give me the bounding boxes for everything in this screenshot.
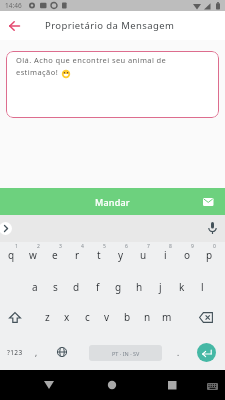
button[interactable]: k (171, 276, 192, 298)
button[interactable] (208, 222, 217, 235)
button[interactable]: e (44, 243, 66, 266)
button[interactable]: . (170, 341, 186, 363)
staticText: n (144, 310, 151, 324)
staticText: o (184, 248, 191, 262)
staticText: u (140, 248, 147, 262)
staticText: c (85, 310, 90, 324)
staticText: g (115, 280, 122, 294)
button[interactable] (161, 374, 183, 396)
staticText: d (73, 280, 80, 294)
staticText: , (35, 347, 38, 358)
button[interactable] (101, 374, 123, 396)
button[interactable]: t (88, 243, 110, 266)
staticText: s (53, 280, 58, 294)
staticText: 5 (103, 243, 106, 250)
button[interactable]: g (108, 276, 129, 298)
staticText: f (96, 280, 100, 294)
button[interactable] (204, 380, 220, 394)
staticText: 1 (15, 243, 18, 250)
staticText: 8 (169, 243, 172, 250)
button[interactable] (198, 306, 214, 328)
button[interactable]: l (192, 276, 213, 298)
button[interactable] (4, 16, 24, 36)
staticText: t (97, 248, 101, 262)
button[interactable]: z (37, 306, 57, 328)
button[interactable]: o (176, 243, 198, 266)
button[interactable]: Mandar (0, 188, 225, 215)
staticText: m (162, 310, 172, 324)
staticText: i (164, 248, 167, 262)
staticText: e (52, 248, 58, 262)
staticText: v (104, 310, 110, 324)
staticText: 2 (37, 243, 40, 250)
staticText: a (32, 280, 38, 294)
staticText: 4 (81, 243, 84, 250)
button[interactable]: i (154, 243, 176, 266)
button[interactable]: d (66, 276, 87, 298)
button[interactable]: c (77, 306, 97, 328)
button[interactable]: r (66, 243, 88, 266)
staticText: z (45, 310, 50, 324)
staticText: 7 (147, 243, 150, 250)
staticText: j (159, 280, 162, 294)
staticText: y (118, 248, 124, 262)
staticText: 0 (213, 243, 216, 250)
button[interactable]: y (110, 243, 132, 266)
button[interactable]: q (0, 243, 22, 266)
button[interactable]: u (132, 243, 154, 266)
button[interactable] (54, 341, 69, 363)
button[interactable]: a (24, 276, 45, 298)
button[interactable]: f (87, 276, 108, 298)
button[interactable] (8, 306, 22, 328)
staticText: x (64, 310, 70, 324)
button[interactable]: b (117, 306, 137, 328)
staticText: Olá. Acho que encontrei seu animal de es… (16, 55, 167, 77)
button[interactable]: w (22, 243, 44, 266)
staticText: b (124, 310, 131, 324)
button[interactable]: p (198, 243, 220, 266)
staticText: k (179, 280, 185, 294)
staticText: 3 (59, 243, 62, 250)
button[interactable]: , (30, 341, 42, 363)
button[interactable]: m (157, 306, 177, 328)
button[interactable]: n (137, 306, 157, 328)
staticText: . (177, 347, 180, 358)
button[interactable]: h (129, 276, 150, 298)
button[interactable]: s (45, 276, 66, 298)
button[interactable]: x (57, 306, 77, 328)
staticText: l (201, 280, 204, 294)
staticText: q (8, 248, 15, 262)
staticText: PT · IN · SV (112, 350, 140, 357)
staticText: 14:46 (5, 1, 22, 10)
button[interactable]: j (150, 276, 171, 298)
staticText: h (136, 280, 143, 294)
button[interactable] (0, 222, 12, 235)
button[interactable]: v (97, 306, 117, 328)
staticText: ?123 (7, 348, 23, 357)
staticText: r (75, 248, 80, 262)
button[interactable] (197, 343, 216, 362)
staticText: Proprietário da Mensagem (45, 19, 175, 32)
button[interactable]: ?123 (2, 341, 28, 363)
button[interactable]: Olá. Acho que encontrei seu animal de es… (6, 51, 219, 118)
staticText: w (29, 248, 37, 262)
staticText: 6 (125, 243, 128, 250)
button[interactable] (38, 374, 60, 396)
button[interactable]: PT · IN · SV (89, 345, 162, 361)
staticText: p (206, 248, 213, 262)
staticText: 9 (191, 243, 194, 250)
staticText: Mandar (95, 196, 130, 208)
